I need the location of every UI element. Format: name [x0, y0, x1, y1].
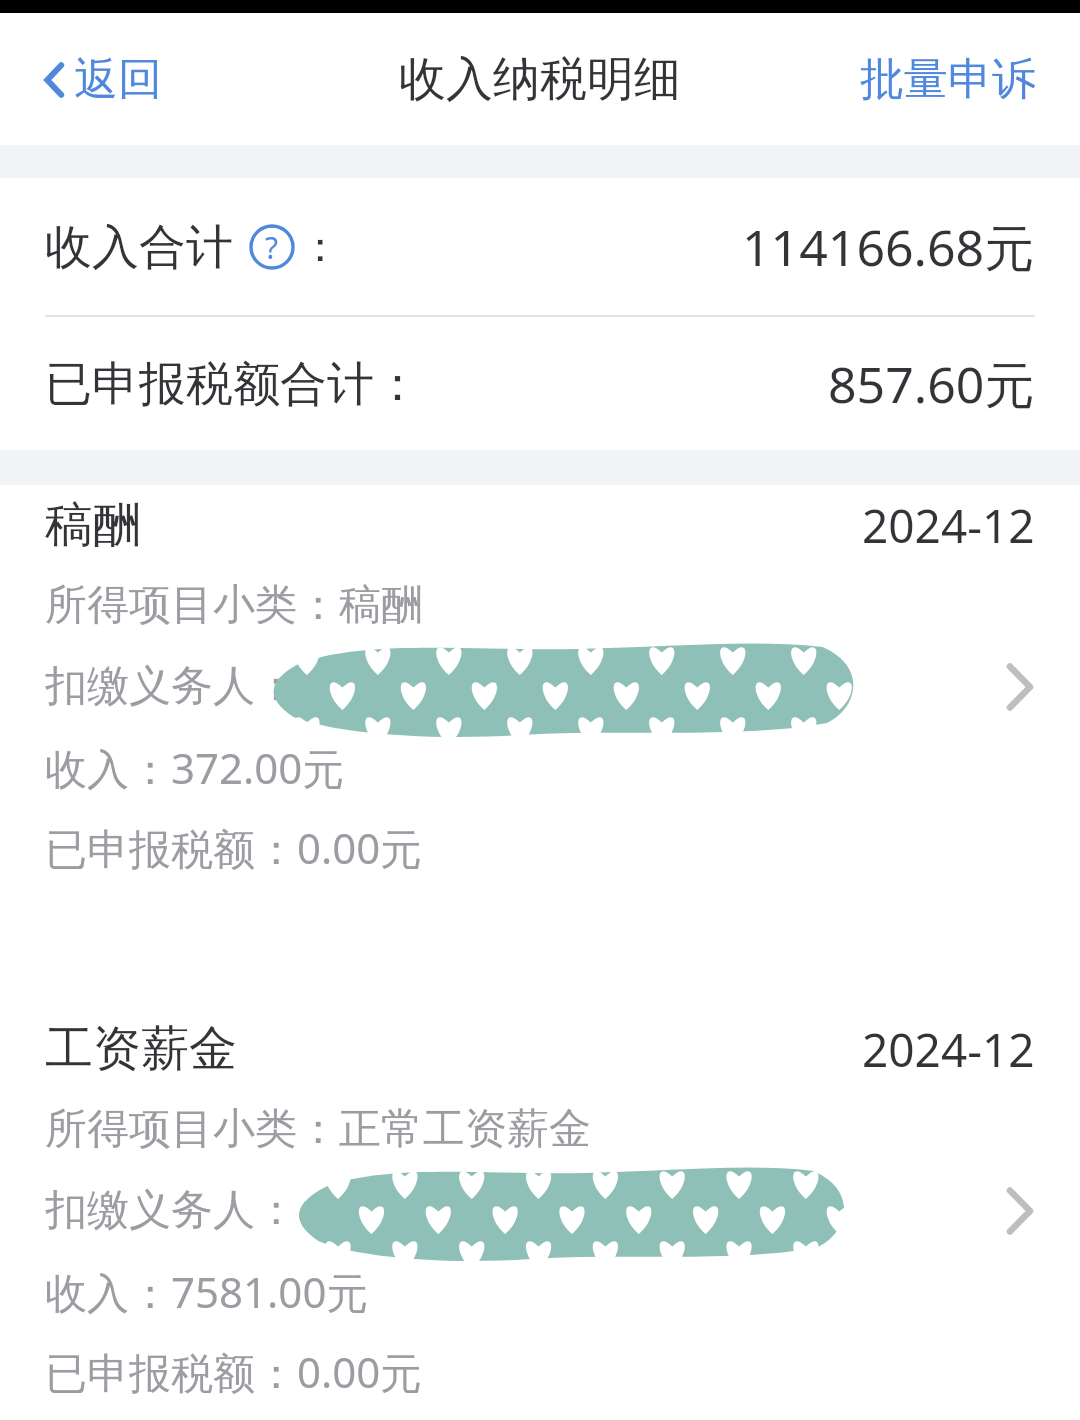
staticText: 返回 — [74, 52, 162, 107]
staticText: 收入：7581.00元 — [45, 1263, 369, 1320]
staticText: 扣缴义务人： — [45, 1184, 297, 1237]
staticText: 工资薪金 — [45, 1019, 237, 1079]
other: 查看详情 — [1002, 1179, 1038, 1243]
staticText: 已申报税额合计： — [45, 355, 421, 414]
staticText: ： — [299, 221, 341, 274]
staticText: 稿酬 — [45, 495, 141, 555]
staticText: 已申报税额：0.00元 — [45, 819, 423, 876]
button[interactable]: 返回 — [34, 38, 170, 121]
button[interactable]: 工资薪金 — [0, 1009, 1080, 1420]
other: 查看详情 — [1002, 655, 1038, 719]
staticText: 收入纳税明细 — [399, 50, 681, 109]
button[interactable]: 已申报税额合计： — [0, 317, 1080, 450]
staticText: 扣缴义务人： — [45, 660, 297, 713]
other: 说明 — [249, 224, 295, 270]
staticText: 857.60元 — [828, 350, 1035, 418]
staticText: 收入：372.00元 — [45, 739, 345, 796]
staticText: 114166.68元 — [742, 213, 1035, 281]
button[interactable]: 稿酬 — [0, 485, 1080, 901]
staticText: 所得项目小类：正常工资薪金 — [45, 1103, 591, 1156]
button[interactable]: 批量申诉 — [852, 38, 1044, 121]
staticText: 收入合计 — [45, 218, 233, 277]
staticText: 已申报税额：0.00元 — [45, 1343, 423, 1400]
staticText: 2024-12 — [862, 494, 1035, 557]
staticText: ? — [265, 227, 279, 268]
button[interactable]: 收入合计 — [0, 178, 1080, 315]
staticText: 批量申诉 — [860, 52, 1036, 107]
staticText: 2024-12 — [862, 1018, 1035, 1081]
staticText: 所得项目小类：稿酬 — [45, 579, 423, 632]
